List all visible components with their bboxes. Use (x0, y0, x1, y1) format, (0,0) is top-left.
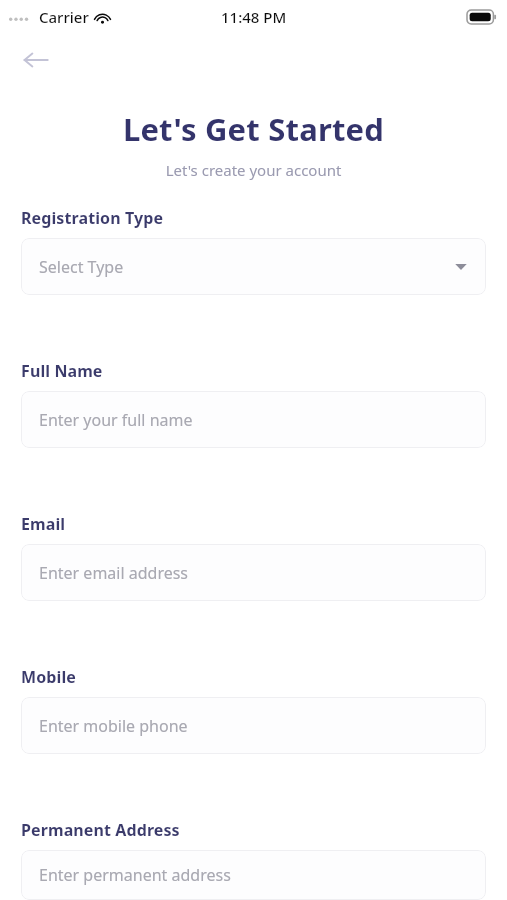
staticText: Full Name (21, 360, 103, 382)
staticText: Enter mobile phone (39, 715, 188, 737)
button[interactable]: Enter your full name (21, 391, 486, 448)
staticText: Enter your full name (39, 409, 193, 431)
staticText: Permanent Address (21, 819, 180, 841)
button[interactable]: Enter email address (21, 544, 486, 601)
staticText: 11:48 PM (221, 7, 287, 27)
button[interactable]: Select Type (21, 238, 486, 295)
button[interactable]: Back (16, 40, 56, 80)
staticText: Carrier (39, 7, 89, 27)
staticText: Let's create your account (0, 160, 507, 180)
button[interactable]: Enter permanent address (21, 850, 486, 900)
staticText: Email (21, 513, 66, 535)
staticText: Let's Get Started (0, 108, 507, 150)
staticText: Select Type (39, 256, 124, 278)
staticText: Enter email address (39, 562, 189, 584)
staticText: Mobile (21, 666, 76, 688)
staticText: Registration Type (21, 207, 164, 229)
button[interactable]: Enter mobile phone (21, 697, 486, 754)
staticText: Enter permanent address (39, 864, 231, 886)
